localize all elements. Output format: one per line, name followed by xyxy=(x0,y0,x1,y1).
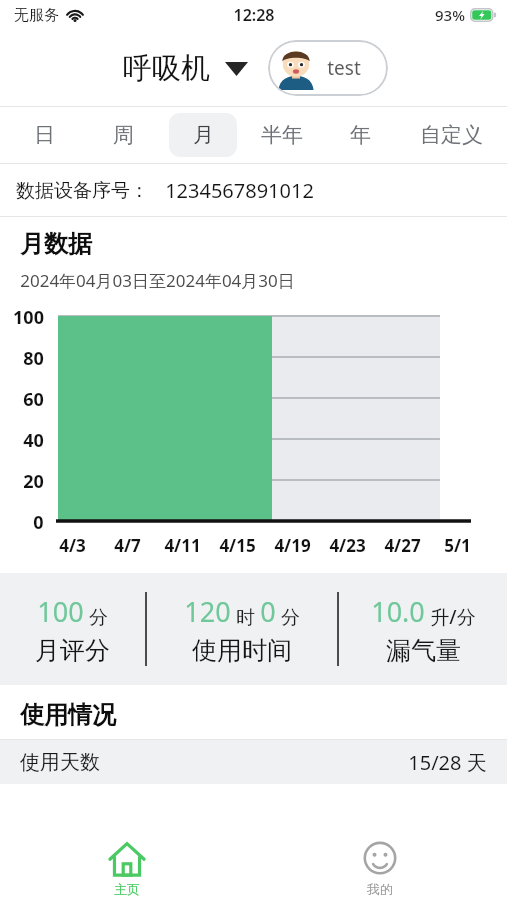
other: 主页 xyxy=(108,841,146,879)
staticText: 数据设备序号： xyxy=(16,179,149,203)
button[interactable]: 主页 xyxy=(0,838,253,900)
staticText: 无服务 xyxy=(14,6,59,25)
button[interactable]: 我的 xyxy=(253,838,507,900)
staticText: 20 xyxy=(23,469,44,494)
staticText: 60 xyxy=(23,387,44,412)
button[interactable]: 半年 xyxy=(242,107,321,163)
staticText: 4/7 xyxy=(114,534,141,557)
button[interactable]: 日 xyxy=(4,107,84,163)
staticText: 使用时间 xyxy=(192,635,292,666)
staticText: 40 xyxy=(23,428,44,453)
staticText: 10.0 xyxy=(371,593,425,630)
button[interactable]: 年 xyxy=(321,107,400,163)
staticText: 100 xyxy=(37,593,84,630)
staticText: 分 xyxy=(281,606,300,630)
staticText: 月 xyxy=(193,122,214,148)
staticText: 4/3 xyxy=(59,534,86,557)
button[interactable]: 呼吸机 xyxy=(119,44,252,93)
staticText: 5/1 xyxy=(444,534,471,557)
staticText: 120 xyxy=(184,593,231,630)
staticText: 4/27 xyxy=(384,534,421,557)
button[interactable]: 周 xyxy=(84,107,163,163)
staticText: 2024年04月03日至2024年04月30日 xyxy=(20,269,295,292)
button[interactable]: 100 xyxy=(0,573,145,685)
button[interactable]: 月 xyxy=(163,107,242,163)
staticText: 0 xyxy=(260,593,276,630)
staticText: 月评分 xyxy=(35,635,110,666)
staticText: 1234567891012 xyxy=(165,177,314,204)
staticText: 12:28 xyxy=(233,4,275,26)
staticText: 使用情况 xyxy=(20,700,116,730)
staticText: 时 xyxy=(236,606,255,630)
button[interactable]: 使用天数 xyxy=(0,740,507,784)
staticText: 漏气量 xyxy=(386,635,461,666)
button[interactable]: 自定义 xyxy=(400,107,503,163)
staticText: 4/23 xyxy=(329,534,366,557)
staticText: 呼吸机 xyxy=(123,50,210,87)
button[interactable]: test xyxy=(268,40,388,96)
staticText: 自定义 xyxy=(420,122,483,148)
staticText: 0 xyxy=(33,510,44,535)
staticText: 80 xyxy=(23,346,44,371)
staticText: 年 xyxy=(350,122,371,148)
staticText: 使用天数 xyxy=(20,750,100,775)
staticText: 100 xyxy=(13,305,44,330)
button[interactable]: 10.0 xyxy=(339,573,507,685)
staticText: 4/19 xyxy=(274,534,311,557)
staticText: 15/28 天 xyxy=(408,749,487,776)
staticText: 4/11 xyxy=(164,534,201,557)
staticText: 月数据 xyxy=(20,229,92,259)
staticText: 93% xyxy=(435,5,465,25)
other: 我的 xyxy=(361,841,399,879)
staticText: 主页 xyxy=(114,881,140,897)
staticText: 4/15 xyxy=(219,534,256,557)
staticText: 周 xyxy=(113,122,134,148)
staticText: 半年 xyxy=(261,122,303,148)
staticText: test xyxy=(327,55,361,81)
staticText: 分 xyxy=(89,606,108,630)
button[interactable]: 120 xyxy=(147,573,337,685)
staticText: 我的 xyxy=(367,881,393,897)
staticText: 升/分 xyxy=(430,604,476,630)
staticText: 日 xyxy=(34,122,55,148)
